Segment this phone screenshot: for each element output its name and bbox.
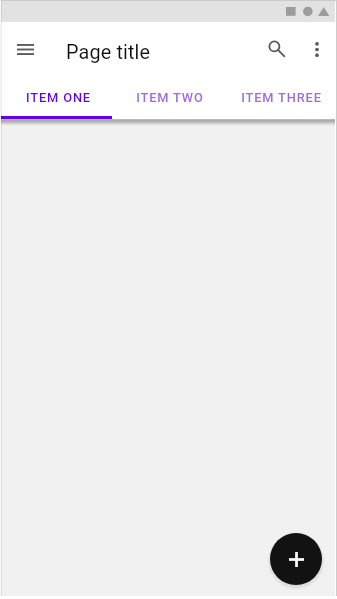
- button[interactable]: Search: [257, 29, 297, 69]
- button[interactable]: ITEM THREE: [226, 75, 337, 119]
- button[interactable]: ITEM TWO: [114, 75, 226, 119]
- button[interactable]: More options: [297, 29, 337, 69]
- button[interactable]: Open navigation drawer: [3, 27, 47, 71]
- staticText: ITEM THREE: [241, 90, 322, 105]
- staticText: ITEM TWO: [136, 90, 204, 105]
- staticText: Page title: [66, 41, 151, 64]
- staticText: ITEM ONE: [26, 90, 91, 105]
- button[interactable]: Add: [270, 533, 322, 585]
- button[interactable]: ITEM ONE: [2, 75, 114, 119]
